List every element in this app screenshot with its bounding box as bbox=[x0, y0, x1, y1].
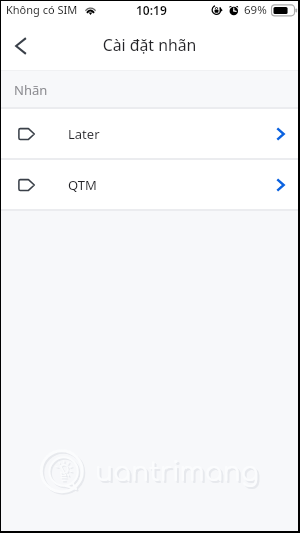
button[interactable]: Later bbox=[1, 109, 298, 158]
staticText: Không có SIM bbox=[6, 2, 78, 17]
button[interactable]: QTM bbox=[1, 160, 298, 209]
staticText: uantrimang bbox=[97, 460, 261, 490]
staticText: 10:19 bbox=[136, 2, 167, 18]
staticText: Later bbox=[68, 125, 100, 143]
staticText: Cài đặt nhãn bbox=[1, 34, 298, 56]
staticText: uantrimang bbox=[95, 458, 259, 488]
staticText: 69% bbox=[244, 2, 267, 18]
staticText: Nhãn bbox=[14, 81, 48, 99]
staticText: QTM bbox=[68, 176, 97, 194]
button[interactable]: Back bbox=[4, 23, 38, 69]
